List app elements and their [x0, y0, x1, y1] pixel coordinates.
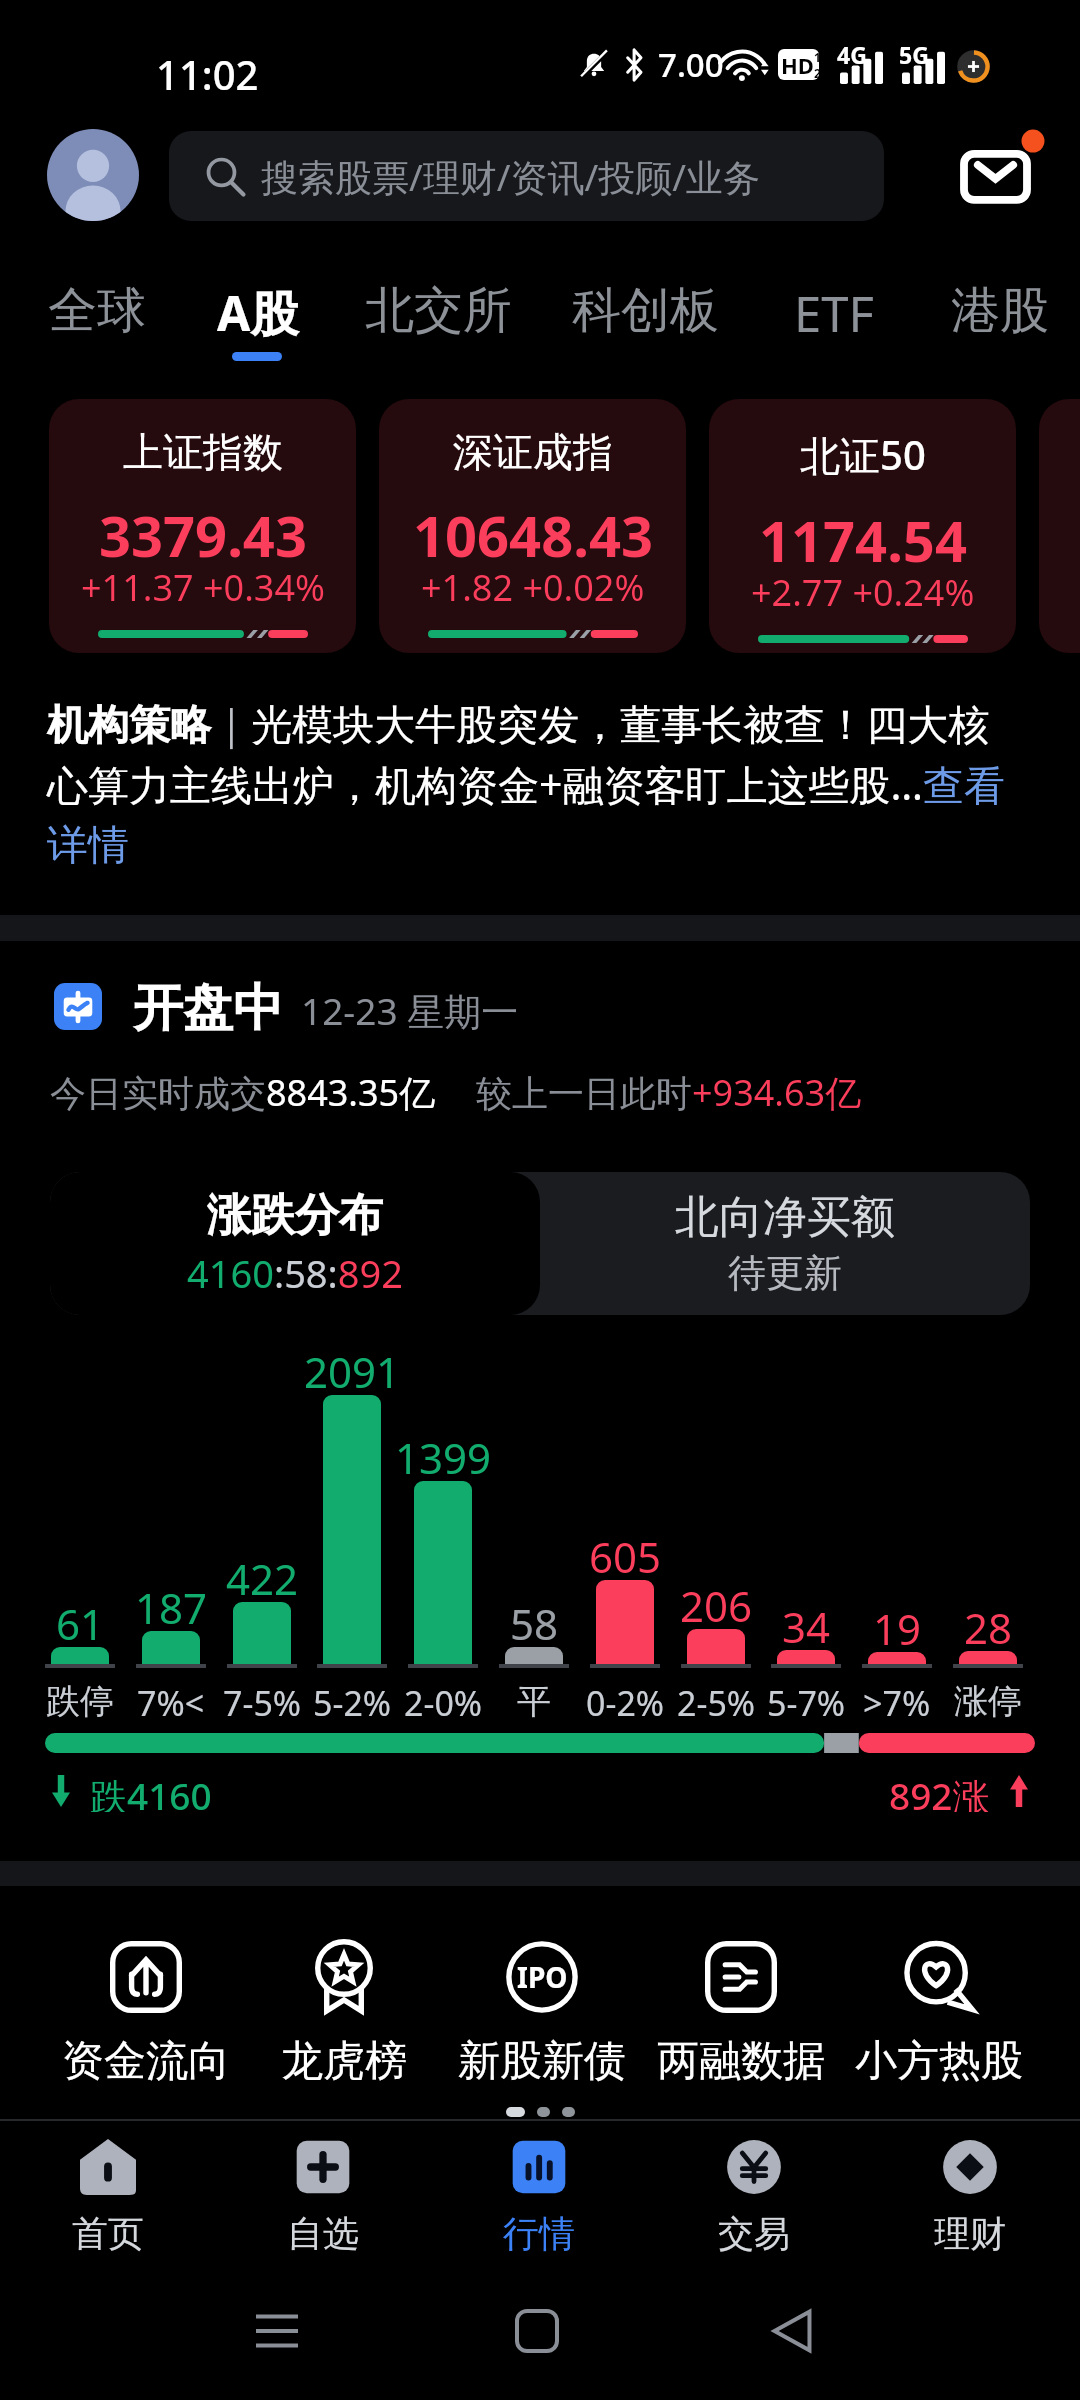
- button[interactable]: 交易: [659, 2139, 849, 2256]
- staticText: 平: [517, 1680, 551, 1723]
- staticText: 涨跌分布: [207, 1188, 383, 1243]
- staticText: 跌停: [46, 1680, 114, 1723]
- button[interactable]: ETF: [776, 264, 856, 366]
- staticText: 5-7%: [767, 1680, 846, 1726]
- staticText: 2-0%: [404, 1680, 483, 1726]
- button[interactable]: 搜索股票/理财/资讯/投顾/业务: [169, 131, 884, 221]
- staticText: 龙虎榜: [281, 2035, 407, 2088]
- staticText: 港股: [951, 280, 1049, 342]
- button[interactable]: 全球: [30, 264, 128, 366]
- staticText: 涨停: [954, 1680, 1022, 1723]
- staticText: 行情: [503, 2211, 575, 2256]
- button[interactable]: 深证成指: [379, 399, 686, 653]
- button[interactable]: Back: [757, 2296, 827, 2366]
- staticText: 1: [814, 49, 819, 65]
- staticText: 北证50: [800, 427, 926, 482]
- staticText: 跌4160: [90, 1770, 212, 1812]
- button[interactable]: 北向净买额: [540, 1172, 1030, 1315]
- staticText: >7%: [863, 1680, 931, 1726]
- staticText: 7-5%: [223, 1680, 302, 1726]
- staticText: 科创板: [572, 280, 719, 342]
- staticText: 892涨: [889, 1770, 990, 1812]
- staticText: 今日实时成交8843.35亿: [50, 1068, 436, 1117]
- staticText: 北交所: [365, 280, 512, 342]
- staticText: 28: [964, 1599, 1013, 1656]
- button[interactable]: 创业板指: [1039, 399, 1080, 653]
- button[interactable]: 两融数据: [646, 1941, 836, 2088]
- button[interactable]: Recents: [242, 2296, 312, 2366]
- staticText: 7.00: [658, 42, 724, 87]
- staticText: ETF: [794, 280, 874, 347]
- staticText: 待更新: [728, 1249, 842, 1297]
- staticText: HD: [781, 50, 814, 80]
- button[interactable]: 自选: [228, 2139, 418, 2256]
- staticText: +1.82 +0.02%: [421, 563, 645, 611]
- staticText: 北向净买额: [675, 1190, 895, 1245]
- staticText: 0-2%: [586, 1680, 665, 1726]
- staticText: A股: [217, 280, 299, 346]
- button[interactable]: 小方热股: [844, 1941, 1034, 2088]
- staticText: 58: [510, 1595, 559, 1652]
- button[interactable]: 行情: [444, 2139, 634, 2256]
- staticText: 自选: [287, 2211, 359, 2256]
- staticText: 61: [56, 1595, 105, 1652]
- staticText: 较上一日此时+934.63亿: [476, 1068, 862, 1117]
- staticText: 首页: [72, 2211, 144, 2256]
- staticText: 605: [589, 1528, 662, 1585]
- button[interactable]: Profile: [47, 129, 139, 221]
- button[interactable]: 涨跌分布: [50, 1172, 540, 1315]
- button[interactable]: 科创板: [554, 264, 701, 366]
- staticText: 机构策略｜光模块大牛股突发，董事长被查！四大核心算力主线出炉，机构资金+融资客盯…: [47, 700, 1007, 871]
- button[interactable]: 北交所: [347, 264, 494, 366]
- staticText: 5G: [899, 39, 929, 70]
- staticText: 2: [814, 65, 819, 80]
- staticText: 7%<: [137, 1680, 205, 1726]
- staticText: +11.37 +0.34%: [81, 563, 325, 611]
- staticText: IPO: [517, 1958, 568, 1996]
- button[interactable]: A股: [199, 264, 281, 366]
- button[interactable]: 北证50: [709, 399, 1016, 653]
- staticText: 2091: [304, 1343, 401, 1400]
- staticText: 小方热股: [855, 2035, 1023, 2088]
- button[interactable]: 上证指数: [49, 399, 356, 653]
- staticText: 3379.43: [99, 497, 307, 573]
- staticText: 新股新债: [458, 2035, 626, 2088]
- staticText: 34: [782, 1598, 831, 1655]
- staticText: 19: [873, 1600, 922, 1657]
- staticText: 深证成指: [453, 427, 613, 477]
- staticText: 资金流向: [62, 2035, 230, 2088]
- button[interactable]: Messages: [957, 130, 1057, 222]
- staticText: 4G: [837, 39, 867, 70]
- staticText: 2-5%: [677, 1680, 756, 1726]
- button[interactable]: Home: [502, 2296, 572, 2366]
- staticText: 5-2%: [313, 1680, 392, 1726]
- staticText: +2.77 +0.24%: [751, 568, 975, 616]
- button[interactable]: 港股: [933, 264, 1031, 366]
- button[interactable]: 资金流向: [51, 1941, 241, 2088]
- staticText: 1399: [395, 1429, 492, 1486]
- staticText: 两融数据: [657, 2035, 825, 2088]
- staticText: 206: [680, 1577, 753, 1634]
- staticText: 搜索股票/理财/资讯/投顾/业务: [261, 151, 761, 202]
- staticText: 10648.43: [413, 497, 653, 573]
- button[interactable]: IPO: [447, 1941, 637, 2088]
- staticText: 4160:58:892: [187, 1247, 403, 1299]
- staticText: 理财: [934, 2211, 1006, 2256]
- button[interactable]: 首页: [13, 2139, 203, 2256]
- button[interactable]: 理财: [875, 2139, 1065, 2256]
- staticText: 上证指数: [123, 427, 283, 477]
- staticText: 开盘中: [133, 977, 283, 1040]
- staticText: 422: [226, 1550, 299, 1607]
- staticText: 12-23 星期一: [301, 985, 519, 1036]
- staticText: 全球: [48, 280, 146, 342]
- button[interactable]: 龙虎榜: [249, 1941, 439, 2088]
- staticText: 187: [135, 1579, 208, 1636]
- staticText: 11:02: [156, 47, 259, 101]
- staticText: 1174.54: [759, 502, 967, 578]
- button[interactable]: 机构策略｜光模块大牛股突发，董事长被查！四大核心算力主线出炉，机构资金+融资客盯…: [47, 700, 1007, 871]
- staticText: 交易: [718, 2211, 790, 2256]
